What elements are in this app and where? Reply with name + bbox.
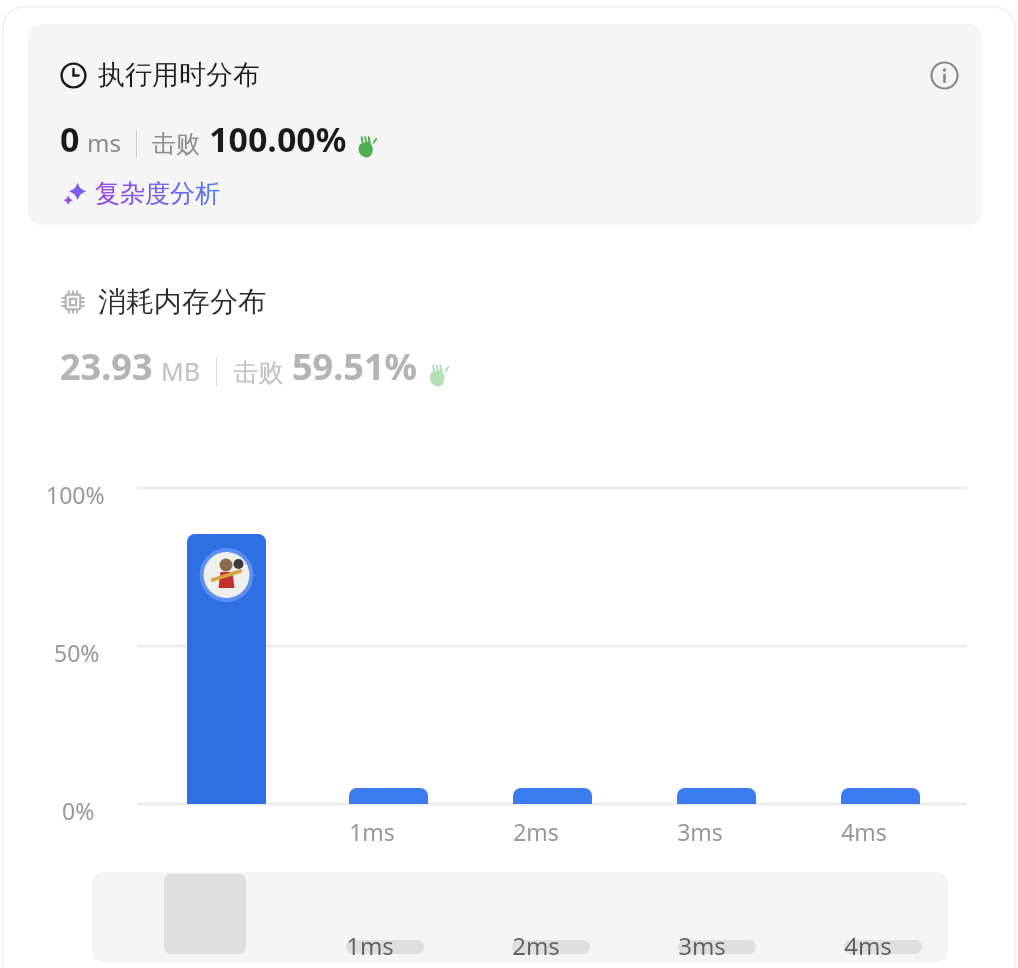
staticText: 100.00% xyxy=(209,116,347,162)
staticText: 100% xyxy=(46,479,105,510)
staticText: 59.51% xyxy=(292,342,417,391)
staticText: 0 xyxy=(60,116,80,162)
staticText: 0% xyxy=(62,795,95,826)
staticText: 23.93 xyxy=(60,342,153,391)
staticText: 复杂度分析 xyxy=(95,178,220,209)
staticText: 2ms xyxy=(512,929,560,962)
staticText: ms xyxy=(87,126,121,159)
staticText: 消耗内存分布 xyxy=(98,284,266,319)
staticText: 1ms xyxy=(346,929,394,962)
button[interactable]: 复杂度分析 xyxy=(58,176,224,211)
staticText: 4ms xyxy=(844,929,892,962)
button[interactable]: Info xyxy=(924,55,964,95)
staticText: 50% xyxy=(54,637,100,668)
staticText: MB xyxy=(161,354,200,388)
staticText: 3ms xyxy=(678,929,726,962)
staticText: 击败 xyxy=(152,129,200,159)
staticText: 2ms xyxy=(513,816,559,847)
staticText: 1ms xyxy=(349,816,395,847)
button[interactable] xyxy=(92,872,948,962)
staticText: 执行用时分布 xyxy=(98,58,260,92)
staticText: 击败 xyxy=(233,357,283,388)
staticText: 3ms xyxy=(677,816,723,847)
staticText: 4ms xyxy=(841,816,887,847)
